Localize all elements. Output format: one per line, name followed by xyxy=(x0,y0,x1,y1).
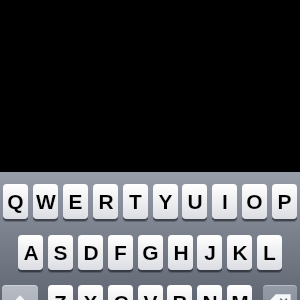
button[interactable]: S xyxy=(48,235,73,270)
staticText: Q xyxy=(7,190,24,213)
button[interactable]: Shift xyxy=(2,285,38,300)
button[interactable]: A xyxy=(18,235,43,270)
button[interactable]: Z xyxy=(48,285,73,300)
button[interactable]: C xyxy=(108,285,133,300)
button[interactable]: L xyxy=(257,235,282,270)
staticText: C xyxy=(113,291,129,300)
staticText: H xyxy=(173,241,189,264)
staticText: P xyxy=(277,190,292,213)
staticText: K xyxy=(232,241,248,264)
staticText: Y xyxy=(158,190,173,213)
button[interactable]: G xyxy=(138,235,163,270)
staticText: V xyxy=(143,291,158,300)
staticText: T xyxy=(129,190,142,213)
button[interactable]: D xyxy=(78,235,103,270)
button[interactable]: I xyxy=(212,184,237,219)
button[interactable]: J xyxy=(197,235,222,270)
staticText: U xyxy=(187,190,203,213)
staticText: L xyxy=(263,241,276,264)
button[interactable]: B xyxy=(167,285,192,300)
staticText: I xyxy=(222,190,228,213)
staticText: S xyxy=(53,241,68,264)
button[interactable]: W xyxy=(33,184,58,219)
button[interactable]: U xyxy=(182,184,207,219)
button[interactable]: N xyxy=(197,285,222,300)
staticText: X xyxy=(83,291,98,300)
staticText: M xyxy=(231,291,249,300)
button[interactable]: H xyxy=(168,235,193,270)
staticText: E xyxy=(68,190,83,213)
staticText: W xyxy=(36,190,56,213)
staticText: J xyxy=(204,241,216,264)
button[interactable]: K xyxy=(227,235,252,270)
button[interactable]: E xyxy=(63,184,88,219)
button[interactable]: P xyxy=(272,184,297,219)
button[interactable]: M xyxy=(227,285,252,300)
staticText: A xyxy=(23,241,39,264)
button[interactable]: T xyxy=(123,184,148,219)
button[interactable]: F xyxy=(108,235,133,270)
staticText: F xyxy=(114,241,127,264)
staticText: B xyxy=(172,291,188,300)
button[interactable]: V xyxy=(138,285,163,300)
button[interactable]: X xyxy=(78,285,103,300)
button[interactable]: R xyxy=(93,184,118,219)
staticText: R xyxy=(98,190,114,213)
button[interactable]: Y xyxy=(153,184,178,219)
button[interactable]: O xyxy=(242,184,267,219)
staticText: Z xyxy=(54,291,67,300)
staticText: G xyxy=(142,241,159,264)
button[interactable]: Backspace xyxy=(263,285,297,300)
staticText: O xyxy=(246,190,263,213)
staticText: D xyxy=(83,241,99,264)
button[interactable]: Q xyxy=(3,184,28,219)
staticText: N xyxy=(202,291,218,300)
